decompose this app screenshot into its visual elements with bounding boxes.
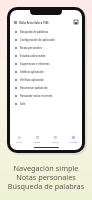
staticText: Restaurar notas recientes [20, 94, 53, 98]
button[interactable]: Estudios adicionales [10, 52, 82, 60]
button[interactable]: Menu [10, 18, 82, 26]
button[interactable]: Reconectar aplicación [10, 84, 82, 92]
button[interactable]: Salir [10, 100, 82, 108]
staticText: Biblia Reina Valera 1960 [19, 21, 49, 24]
staticText: Biblia [34, 140, 41, 143]
staticText: Gráficos aplicación [20, 70, 44, 74]
button[interactable]: Ajustes [64, 136, 82, 143]
staticText: Salir [20, 102, 26, 106]
button[interactable]: Restaurar notas recientes [10, 92, 82, 100]
staticText: Inicio [16, 140, 23, 143]
button[interactable]: Sugerencias e informes [10, 60, 82, 68]
button[interactable]: Biblia [28, 136, 46, 143]
staticText: Navegación simple Notas personales Búsqu… [0, 163, 92, 191]
button[interactable]: Notas [46, 136, 64, 143]
staticText: Búsqueda de palabras [20, 30, 48, 34]
button[interactable]: Inicio [10, 136, 28, 143]
staticText: Ajustes [69, 140, 78, 143]
button[interactable]: Guardar [73, 19, 79, 25]
button[interactable]: Gráficos aplicación [10, 68, 82, 76]
staticText: Configuración de aplicación [20, 38, 55, 42]
button[interactable]: Menu [13, 20, 18, 25]
staticText: Verificar aplicación [20, 78, 44, 82]
button[interactable]: Búsqueda de palabras [10, 28, 82, 36]
button[interactable]: Notas personales [10, 44, 82, 52]
button[interactable]: Configuración de aplicación [10, 36, 82, 44]
staticText: Reconectar aplicación [20, 86, 48, 90]
staticText: Sugerencias e informes [20, 62, 50, 66]
staticText: Notas [52, 140, 59, 143]
staticText: Notas personales [20, 46, 43, 50]
staticText: Estudios adicionales [20, 54, 46, 58]
button[interactable]: Verificar aplicación [10, 76, 82, 84]
